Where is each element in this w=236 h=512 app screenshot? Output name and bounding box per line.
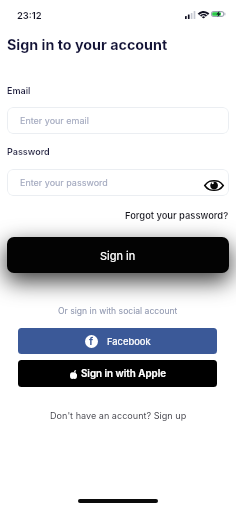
staticText: Or sign in with social account — [58, 306, 178, 316]
staticText: Enter your email — [20, 115, 89, 126]
staticText: Sign in to your account — [7, 36, 168, 53]
staticText: Sign in with Apple — [81, 368, 166, 380]
button[interactable]: Enter your password — [7, 169, 229, 196]
staticText: f — [89, 335, 94, 348]
staticText: Sign in — [100, 249, 136, 262]
button[interactable]: Sign in with Apple — [18, 360, 217, 387]
button[interactable]: Sign in — [7, 237, 229, 273]
staticText: Email — [7, 85, 31, 96]
button[interactable]: Don't have an account? Sign up — [50, 410, 187, 421]
button[interactable]: f — [18, 328, 217, 354]
button[interactable]: Show password — [204, 170, 229, 195]
staticText: 23:12 — [17, 10, 42, 21]
staticText: Password — [7, 146, 50, 157]
button[interactable]: Forgot your password? — [125, 210, 229, 221]
staticText: Facebook — [107, 336, 151, 347]
button[interactable]: Enter your email — [7, 107, 229, 134]
staticText: Enter your password — [20, 177, 108, 188]
